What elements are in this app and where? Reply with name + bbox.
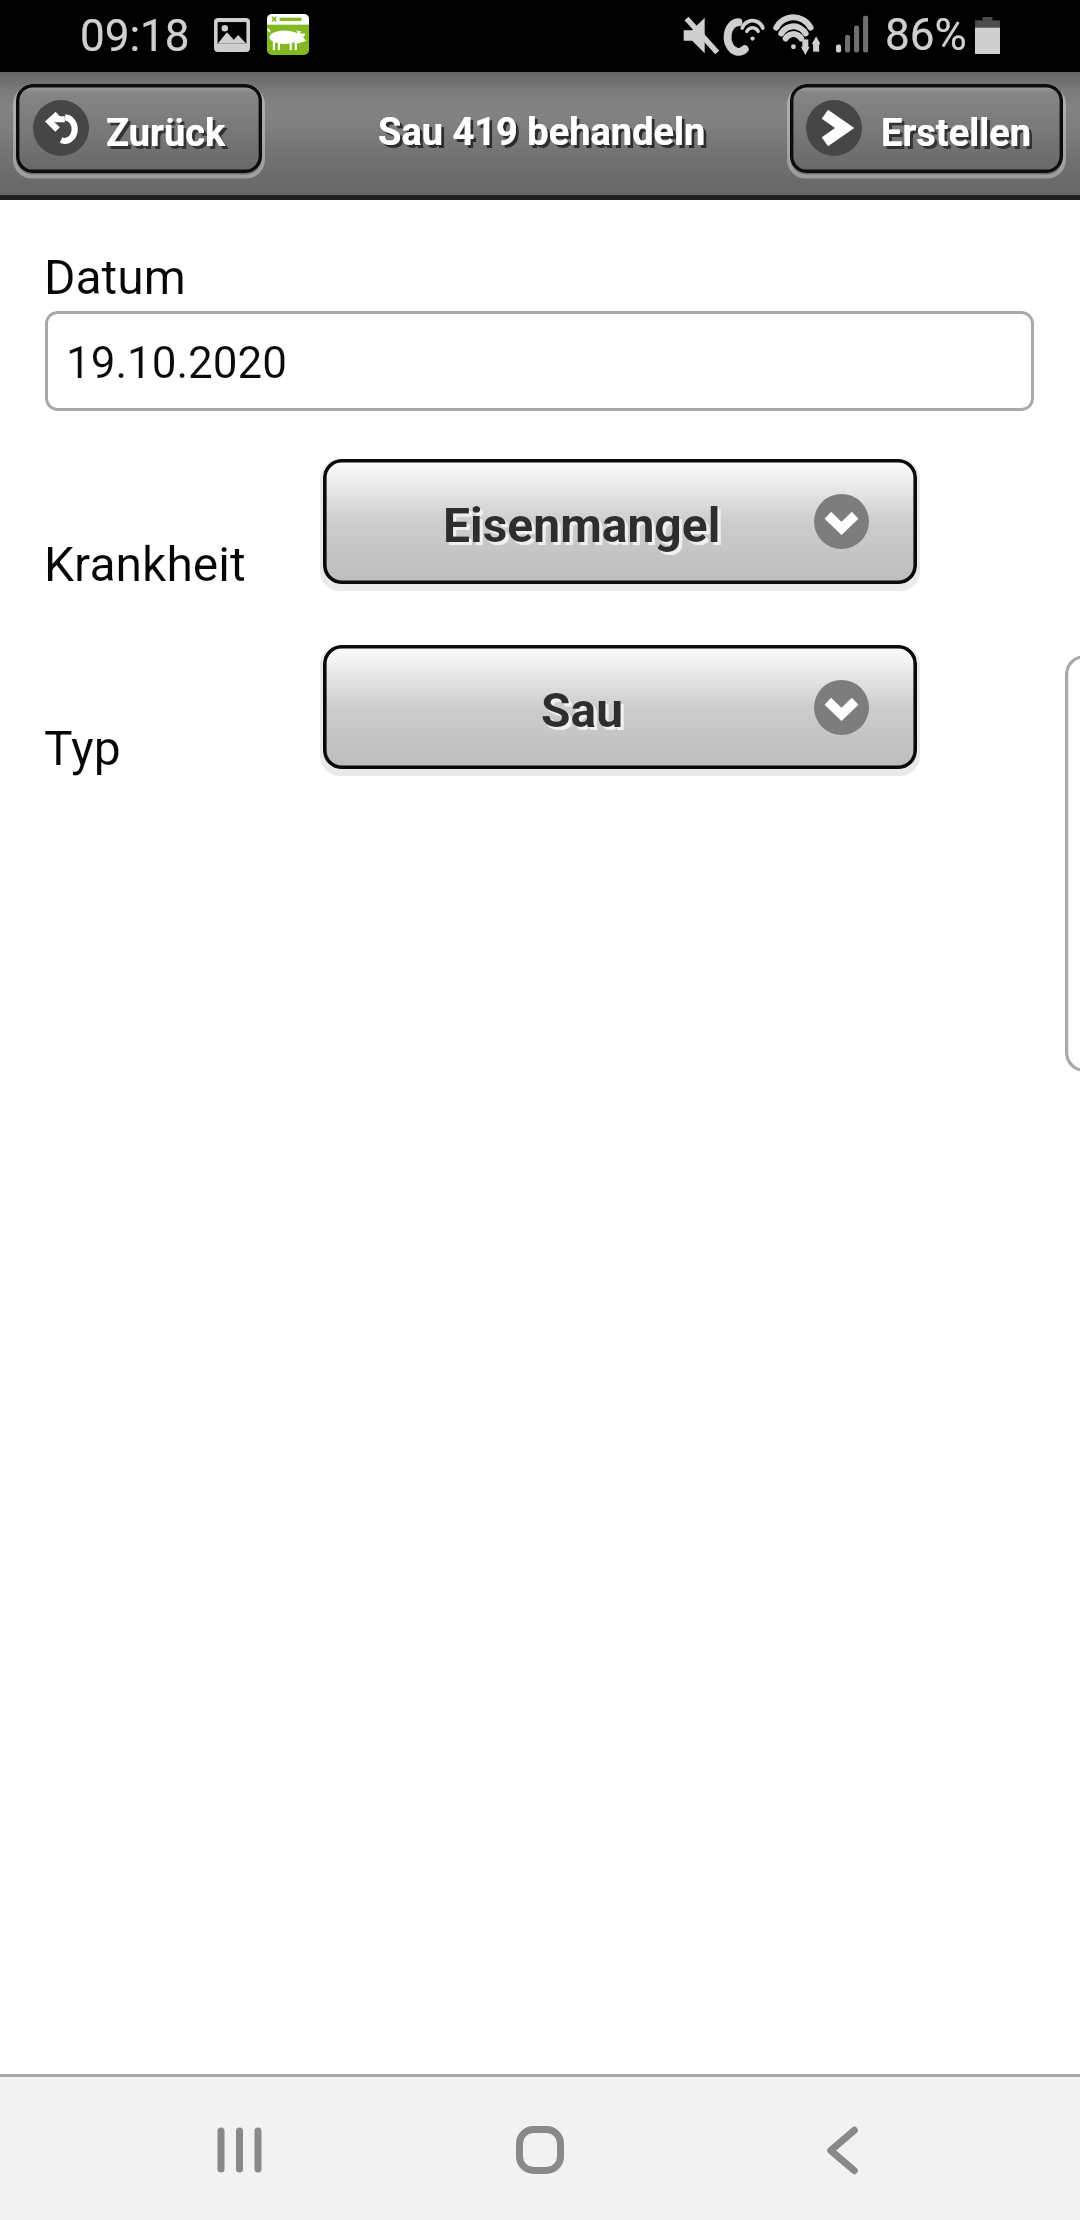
staticText: Typ: [44, 720, 121, 776]
button[interactable]: Home: [480, 2077, 600, 2220]
button[interactable]: [790, 84, 1063, 173]
button[interactable]: 19.10.2020: [45, 311, 1034, 411]
staticText: Sau: [544, 685, 627, 741]
staticText: Eisenmangel: [446, 500, 724, 556]
staticText: Eisenmangel: [443, 497, 721, 553]
staticText: 09:18: [80, 10, 190, 62]
button[interactable]: Eisenmangel: [323, 459, 917, 584]
staticText: Datum: [44, 249, 186, 305]
staticText: Sau 419 behandeln: [381, 113, 709, 158]
staticText: Zurück: [109, 114, 229, 159]
staticText: 19.10.2020: [66, 337, 288, 389]
staticText: Krankheit: [44, 536, 246, 592]
button[interactable]: [16, 84, 262, 173]
staticText: Erstellen: [884, 114, 1035, 159]
button[interactable]: Sau: [323, 645, 917, 769]
button[interactable]: Back: [782, 2077, 902, 2220]
staticText: Erstellen: [881, 111, 1032, 156]
staticText: Sau 419 behandeln: [378, 110, 706, 155]
staticText: Sau: [541, 682, 624, 738]
staticText: Zurück: [106, 111, 226, 156]
button[interactable]: Recent apps: [179, 2077, 299, 2220]
staticText: 86%: [885, 9, 967, 61]
